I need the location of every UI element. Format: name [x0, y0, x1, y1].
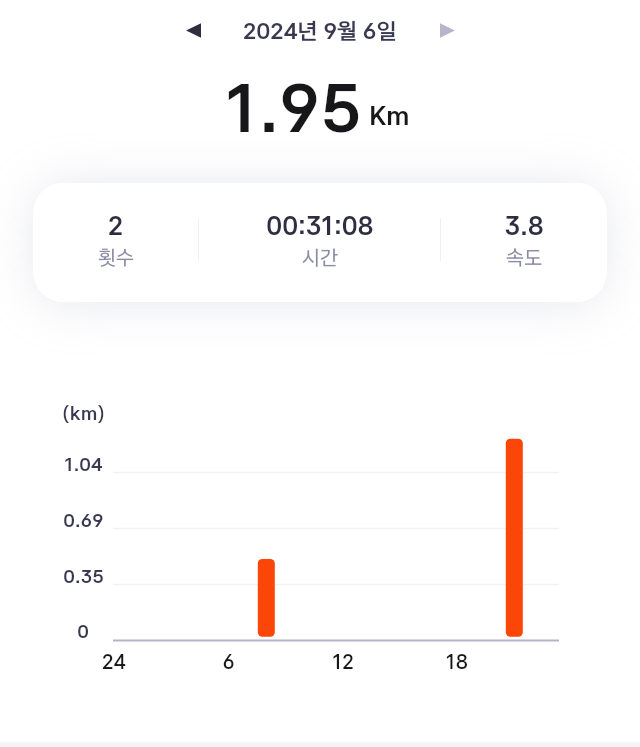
- button[interactable]: Previous day: [172, 8, 216, 52]
- button[interactable]: Next day: [424, 8, 468, 52]
- staticText: 0.69: [63, 509, 104, 532]
- staticText: 0.35: [63, 565, 104, 588]
- staticText: 24: [102, 650, 126, 672]
- staticText: 0: [77, 620, 89, 643]
- staticText: 00:31:08: [266, 210, 374, 241]
- staticText: Km: [369, 99, 410, 131]
- staticText: 2024년 9월 6일: [243, 17, 397, 44]
- button[interactable]: 2: [33, 183, 607, 302]
- staticText: (km): [62, 402, 105, 425]
- staticText: 2: [108, 210, 123, 241]
- staticText: 18: [446, 650, 468, 672]
- staticText: 속도: [506, 245, 542, 270]
- staticText: 1.04: [64, 453, 103, 476]
- staticText: 6: [222, 650, 235, 672]
- staticText: 12: [332, 650, 354, 672]
- staticText: 1.95: [226, 67, 362, 148]
- staticText: 횟수: [98, 245, 134, 270]
- staticText: 3.8: [504, 210, 544, 241]
- staticText: 시간: [302, 245, 338, 270]
